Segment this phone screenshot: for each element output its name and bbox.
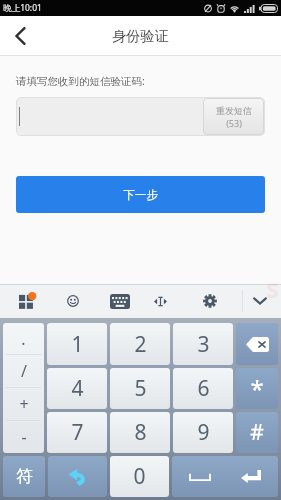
button[interactable]: Settings <box>199 288 221 314</box>
button[interactable]: # <box>236 412 278 453</box>
staticText: + <box>19 393 29 415</box>
staticText: 7 <box>71 418 84 447</box>
button[interactable]: / <box>3 355 44 387</box>
staticText: 4 <box>71 374 84 403</box>
button[interactable]: 9 <box>173 412 233 453</box>
button[interactable]: 2 <box>110 323 170 365</box>
staticText: 8 <box>134 418 147 447</box>
button[interactable]: Emoji <box>64 288 82 314</box>
staticText: * <box>250 372 264 405</box>
button[interactable]: - <box>3 421 44 453</box>
button[interactable]: 7 <box>47 412 107 453</box>
button[interactable]: 5 <box>110 368 170 409</box>
staticText: 9 <box>197 418 210 447</box>
staticText: . <box>21 328 26 350</box>
button[interactable]: Undo <box>48 456 107 497</box>
button[interactable]: . <box>3 323 44 354</box>
button[interactable]: * <box>236 368 278 409</box>
button[interactable]: 0 <box>110 456 169 497</box>
staticText: / <box>21 360 27 382</box>
button[interactable]: 1 <box>47 323 107 365</box>
staticText: 符 <box>16 466 33 487</box>
button[interactable]: + <box>3 388 44 420</box>
staticText: # <box>250 418 264 447</box>
staticText: - <box>21 426 27 448</box>
staticText: 晚上10:01 <box>3 2 42 14</box>
button[interactable]: 8 <box>110 412 170 453</box>
button[interactable]: 重发短信 <box>16 97 265 136</box>
staticText: 1 <box>71 330 84 359</box>
staticText: 重发短信 <box>216 105 252 116</box>
button[interactable]: Keyboard layout <box>108 288 132 314</box>
staticText: 下一步 <box>123 188 158 202</box>
button[interactable]: 3 <box>173 323 233 365</box>
staticText: S <box>266 274 279 304</box>
staticText: 3 <box>197 330 210 359</box>
staticText: 0 <box>133 462 146 491</box>
button[interactable]: Delete <box>236 323 278 365</box>
staticText: 5 <box>134 374 147 403</box>
button[interactable]: 下一步 <box>16 176 265 213</box>
button[interactable]: 6 <box>173 368 233 409</box>
button[interactable]: Move cursor <box>150 288 170 314</box>
button[interactable]: 符 <box>3 456 45 497</box>
staticText: 2 <box>134 330 147 359</box>
staticText: 6 <box>197 374 210 403</box>
button[interactable]: Space and enter <box>172 456 278 497</box>
staticText: 请填写您收到的短信验证码: <box>16 74 145 88</box>
button[interactable]: Hide keyboard <box>249 288 271 314</box>
button[interactable]: Apps <box>16 288 36 314</box>
staticText: (53) <box>226 117 242 129</box>
staticText: 身份验证 <box>112 27 169 45</box>
button[interactable]: 4 <box>47 368 107 409</box>
button[interactable]: 重发短信 <box>203 98 264 135</box>
button[interactable]: Back <box>0 16 40 56</box>
